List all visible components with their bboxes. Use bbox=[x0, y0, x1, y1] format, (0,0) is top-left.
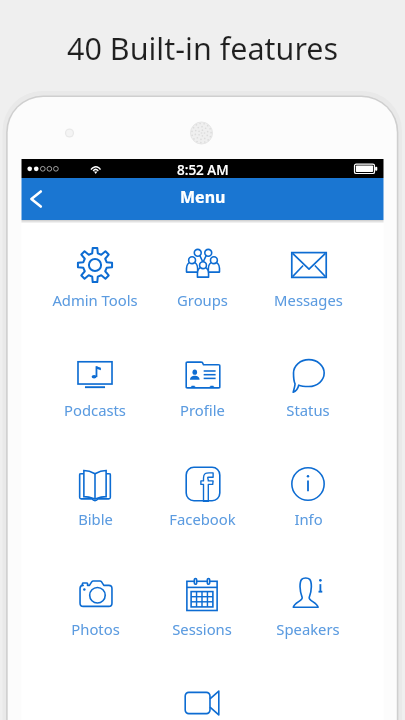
staticText: Facebook bbox=[169, 509, 236, 529]
staticText: Groups bbox=[177, 290, 228, 310]
button[interactable]: Video bbox=[149, 678, 255, 720]
button[interactable]: Photos bbox=[42, 569, 148, 649]
staticText: Messages bbox=[274, 290, 343, 310]
staticText: Sessions bbox=[172, 619, 232, 639]
staticText: Info bbox=[294, 509, 323, 529]
button[interactable]: Podcasts bbox=[42, 350, 148, 430]
button[interactable]: Status bbox=[255, 350, 361, 430]
staticText: Status bbox=[286, 400, 330, 420]
staticText: Profile bbox=[180, 400, 225, 420]
button[interactable]: Admin Tools bbox=[42, 240, 148, 320]
button[interactable]: Profile bbox=[149, 350, 255, 430]
staticText: Bible bbox=[78, 509, 113, 529]
button[interactable]: Messages bbox=[255, 240, 361, 320]
staticText: Podcasts bbox=[64, 400, 126, 420]
staticText: 8:52 AM bbox=[177, 161, 229, 179]
staticText: Speakers bbox=[276, 619, 340, 639]
button[interactable]: Sessions bbox=[149, 569, 255, 649]
staticText: Admin Tools bbox=[52, 290, 138, 310]
button[interactable]: Groups bbox=[149, 240, 255, 320]
button[interactable]: Bible bbox=[42, 459, 148, 539]
staticText: Menu bbox=[180, 186, 226, 208]
button[interactable]: Info bbox=[255, 459, 361, 539]
staticText: 40 Built-in features bbox=[67, 27, 339, 69]
staticText: Photos bbox=[71, 619, 120, 639]
button[interactable]: Facebook bbox=[149, 459, 255, 539]
button[interactable]: Speakers bbox=[255, 569, 361, 649]
